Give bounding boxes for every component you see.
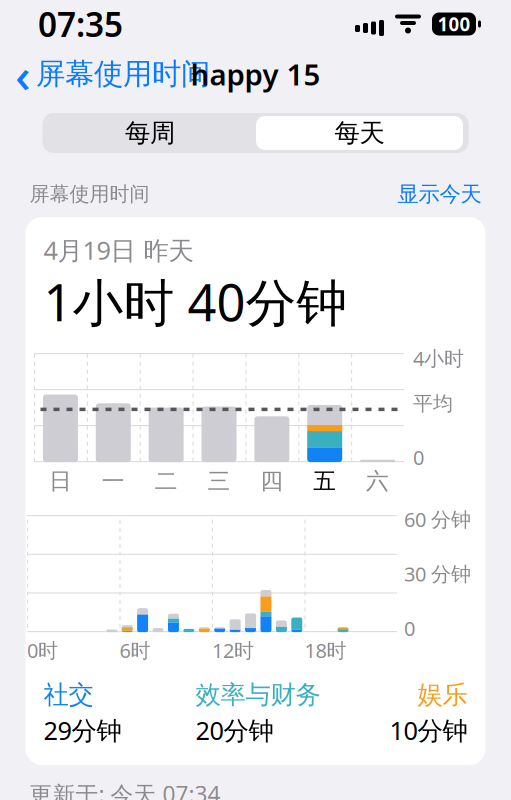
staticText: 三 [207,467,230,495]
staticText: 20分钟 [195,713,273,747]
staticText: 日 [49,467,72,495]
staticText: 每周 [125,117,175,148]
staticText: 6时 [119,637,150,663]
staticText: 娱乐 [417,679,467,710]
staticText: 29分钟 [43,713,121,747]
staticText: 4月19日 昨天 [43,233,193,267]
staticText: 显示今天 [397,181,481,207]
button[interactable]: 每周 [44,116,256,150]
staticText: 二 [155,467,178,495]
staticText: 0时 [27,637,58,663]
staticText: 四 [260,467,283,495]
staticText: 12时 [212,637,254,663]
staticText: 0 [404,615,415,641]
button[interactable]: 显示今天 [397,181,481,207]
staticText: 1小时 40分钟 [43,268,347,335]
button[interactable]: ‹ [0,50,218,98]
staticText: 4小时 [413,345,464,371]
staticText: happy 15 [190,54,320,93]
staticText: 0 [413,444,424,470]
staticText: 屏幕使用时间 [36,56,210,92]
staticText: 100 [437,12,470,36]
staticText: 一 [102,467,125,495]
staticText: 效率与财务 [195,679,320,710]
staticText: 10分钟 [389,713,467,747]
staticText: 社交 [43,679,93,710]
staticText: 平均 [413,391,453,416]
staticText: 30 分钟 [404,560,471,587]
staticText: 60 分钟 [404,506,471,532]
staticText: 更新于: 今天 07:34 [29,779,220,800]
staticText: 每天 [334,117,384,148]
staticText: 六 [366,467,389,495]
staticText: 18时 [304,637,346,663]
staticText: 五 [313,467,336,495]
staticText: 屏幕使用时间 [29,182,149,206]
button[interactable]: 每天 [256,116,463,150]
staticText: 07:35 [38,2,123,46]
staticText: ‹ [15,42,31,106]
